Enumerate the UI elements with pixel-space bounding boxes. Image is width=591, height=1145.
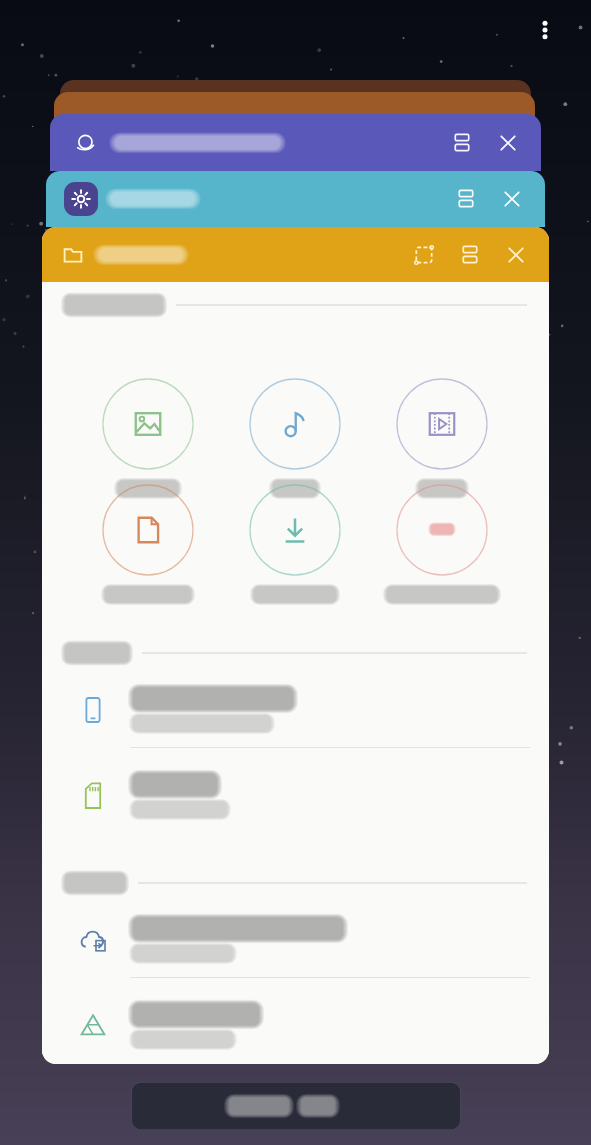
button[interactable]: Open in pop-up view — [401, 232, 447, 278]
button[interactable]: Recent app — [54, 92, 535, 128]
button[interactable] — [396, 377, 488, 481]
button[interactable] — [249, 483, 341, 587]
button[interactable]: Open in split screen view — [46, 171, 545, 227]
button[interactable]: More options — [525, 10, 565, 50]
button[interactable] — [131, 1082, 461, 1130]
button[interactable]: Close — [489, 176, 535, 222]
button[interactable]: Open in split screen view — [439, 120, 485, 166]
button[interactable]: Close — [485, 120, 531, 166]
button[interactable] — [42, 990, 549, 1062]
button[interactable] — [102, 377, 194, 481]
button[interactable] — [42, 904, 549, 976]
button[interactable] — [102, 483, 194, 587]
button[interactable]: Open in pop-up view — [42, 227, 549, 282]
button[interactable]: Close — [493, 232, 539, 278]
button[interactable] — [249, 377, 341, 481]
button[interactable] — [42, 760, 549, 832]
button[interactable]: Open in split screen view — [447, 232, 493, 278]
button[interactable] — [396, 483, 488, 587]
button[interactable]: Open in split screen view — [443, 176, 489, 222]
button[interactable]: Open in split screen view — [50, 114, 541, 171]
button[interactable] — [42, 674, 549, 746]
button[interactable]: Recent app — [60, 80, 531, 120]
